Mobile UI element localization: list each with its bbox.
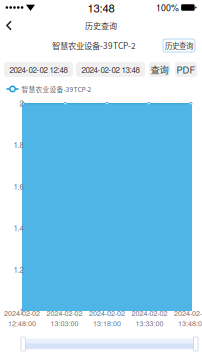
staticText: 2024-02-02 12:48 <box>9 64 67 75</box>
staticText: 2 <box>19 97 23 109</box>
button[interactable]: 历史查询 <box>163 39 195 52</box>
staticText: 1.6 <box>13 180 23 192</box>
staticText: 13:33:00 <box>135 318 163 328</box>
staticText: 2024-02-02 <box>89 308 125 318</box>
staticText: 13:03:00 <box>50 318 78 328</box>
staticText: 2024-02-02 <box>131 308 167 318</box>
staticText: 智慧农业设备-39TCP-2 <box>52 39 136 51</box>
staticText: 1 <box>19 305 23 317</box>
staticText: 1.2 <box>13 264 23 275</box>
staticText: 13:48 <box>87 0 114 16</box>
staticText: 13:18:00 <box>93 318 121 328</box>
button[interactable]: 查询 <box>149 62 170 77</box>
staticText: 13:48:00 <box>178 318 202 328</box>
staticText: 12:48:00 <box>8 318 36 328</box>
staticText: 历史查询 <box>85 20 117 31</box>
staticText: 历史查询 <box>165 40 193 51</box>
staticText: PDF <box>176 63 195 76</box>
staticText: 智慧农业设备-39TCP-2 <box>21 84 91 94</box>
staticText: 查询 <box>150 63 168 76</box>
staticText: 2024-02-02 13:48 <box>81 64 139 75</box>
button[interactable]: 返回 <box>0 15 20 35</box>
staticText: 2024-02-02 <box>4 308 40 318</box>
staticText: 2024-02-02 <box>174 308 202 318</box>
staticText: 1.4 <box>13 222 23 234</box>
staticText: 100% <box>156 1 179 14</box>
button[interactable]: PDF <box>175 62 197 77</box>
staticText: 2024-02-02 <box>46 308 82 318</box>
staticText: 1.8 <box>13 139 23 150</box>
